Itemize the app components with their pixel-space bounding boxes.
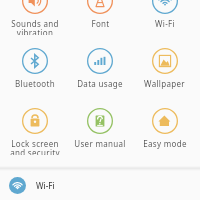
button[interactable]: Bluetooth xyxy=(2,35,67,95)
button[interactable]: Wi-Fi xyxy=(0,171,200,200)
staticText: Data usage xyxy=(77,78,123,89)
staticText: Wallpaper xyxy=(144,78,185,89)
staticText: User manual xyxy=(74,138,126,149)
staticText: Lock screen and security xyxy=(10,138,60,155)
staticText: Easy mode xyxy=(143,138,187,149)
button[interactable]: Font xyxy=(67,0,132,35)
button[interactable]: Data usage xyxy=(67,35,132,95)
button[interactable]: User manual xyxy=(67,95,132,155)
staticText: Font xyxy=(91,18,110,29)
button[interactable]: Easy mode xyxy=(132,95,197,155)
button[interactable]: Sounds and vibration xyxy=(2,0,67,35)
button[interactable]: Wallpaper xyxy=(132,35,197,95)
staticText: Sounds and vibration xyxy=(11,18,59,35)
staticText: Wi-Fi xyxy=(36,180,55,191)
button[interactable]: Lock screen and security xyxy=(2,95,67,155)
staticText: Wi-Fi xyxy=(155,18,175,29)
button[interactable]: Wi-Fi xyxy=(132,0,197,35)
staticText: Bluetooth xyxy=(15,78,55,89)
